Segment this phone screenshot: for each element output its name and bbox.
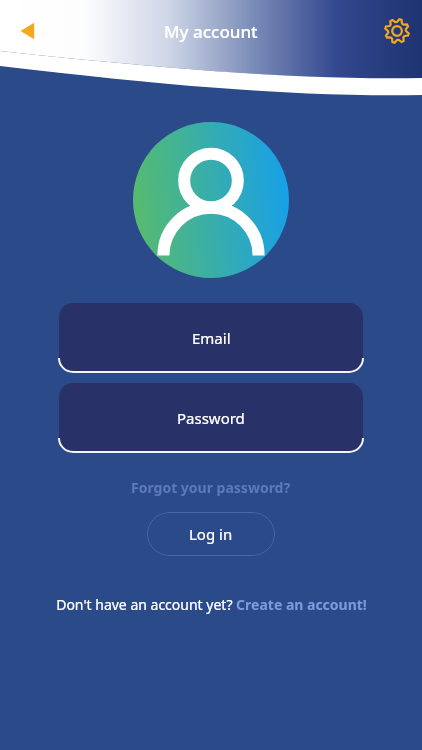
staticText: My account bbox=[164, 20, 258, 43]
button[interactable]: Log in bbox=[147, 512, 275, 556]
button[interactable]: Back bbox=[4, 7, 52, 55]
staticText: Forgot your password? bbox=[131, 478, 291, 497]
staticText: Password bbox=[177, 408, 245, 428]
button[interactable]: Password bbox=[59, 383, 363, 453]
staticText: Email bbox=[192, 328, 231, 348]
button[interactable]: Forgot your password? bbox=[0, 474, 422, 501]
staticText: Don't have an account yet? Create an acc… bbox=[56, 595, 367, 614]
button[interactable]: Don't have an account yet? Create an acc… bbox=[0, 591, 422, 618]
button[interactable]: Settings bbox=[374, 8, 420, 54]
staticText: Log in bbox=[189, 524, 233, 544]
button[interactable]: Email bbox=[59, 303, 363, 373]
